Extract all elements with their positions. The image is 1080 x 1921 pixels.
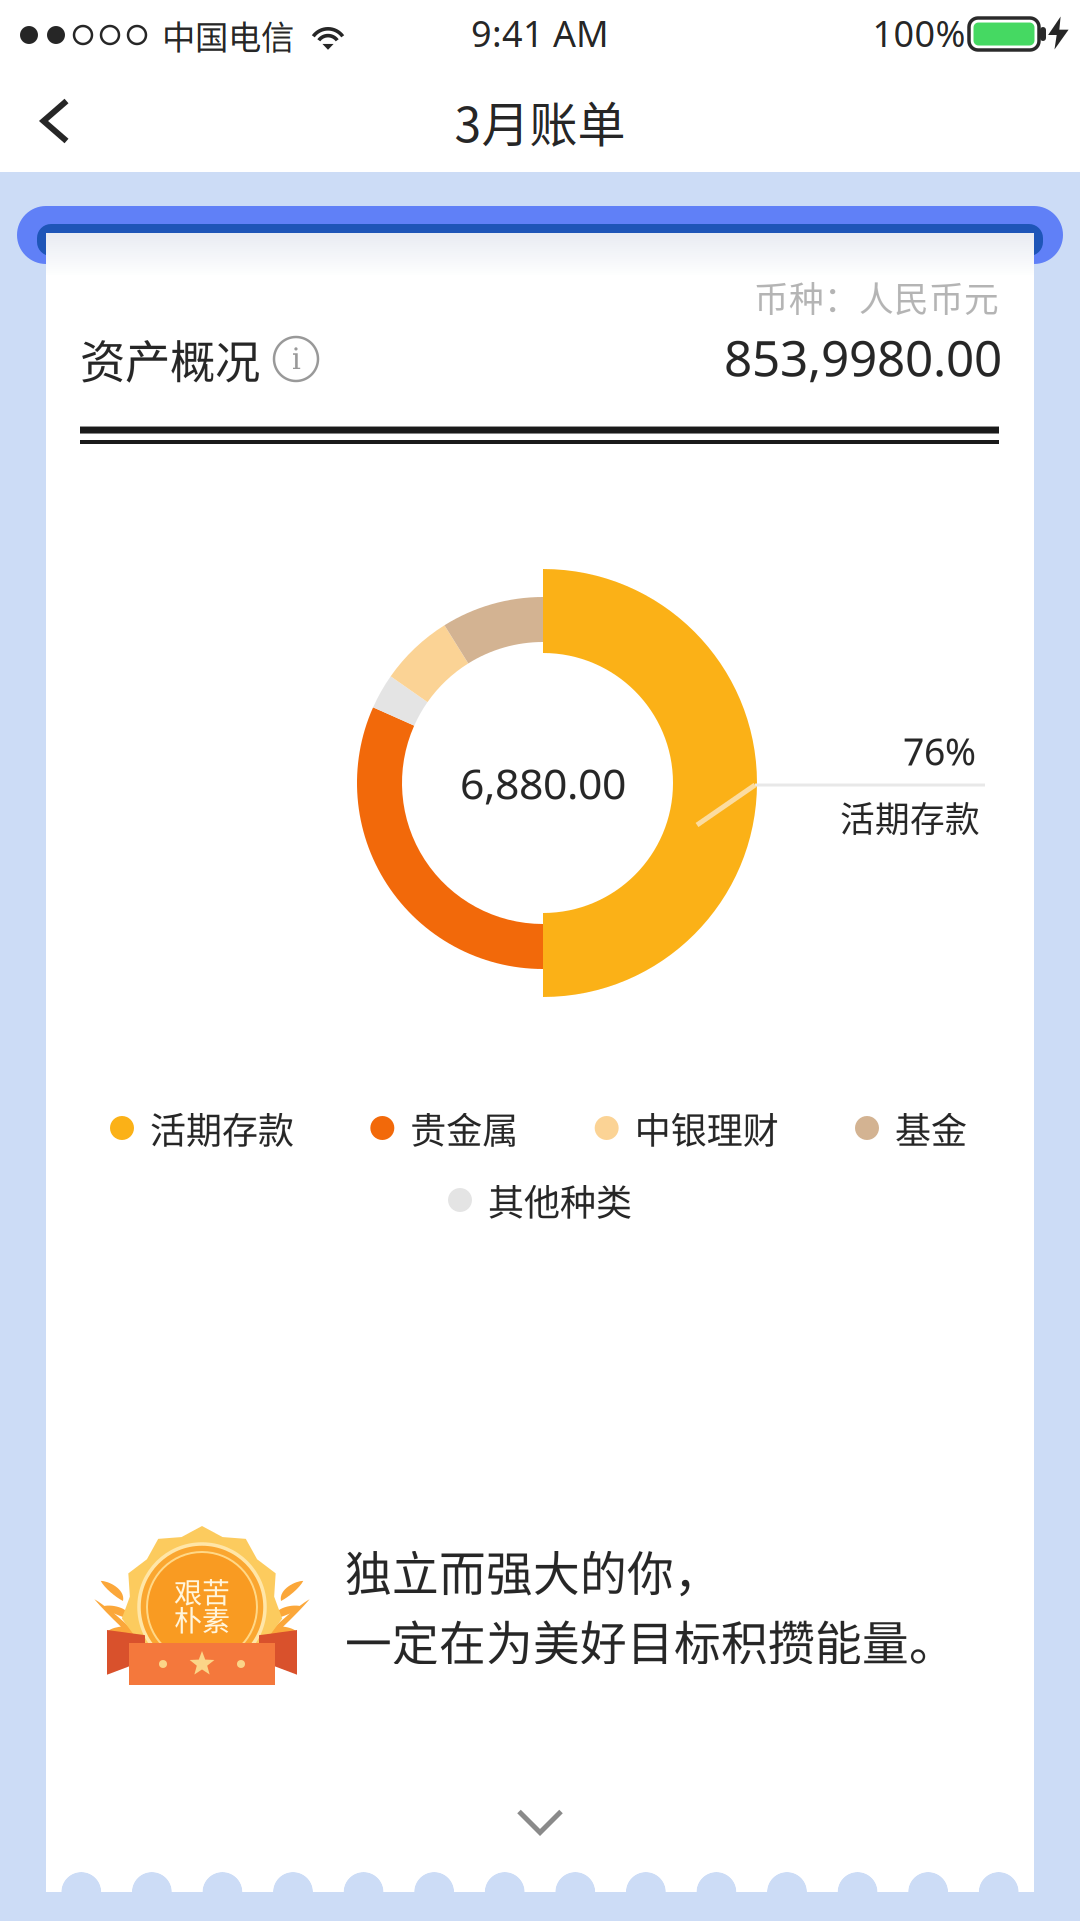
staticText: 9:41 AM — [471, 9, 609, 57]
staticText: i — [291, 342, 300, 376]
staticText: 853,9980.00 — [724, 324, 1002, 390]
staticText: 基金 — [895, 1102, 967, 1154]
staticText: 艰苦 — [174, 1571, 230, 1611]
staticText: 资产概况 — [80, 326, 260, 392]
staticText: 活期存款 — [150, 1102, 294, 1154]
staticText: 独立而强大的你， — [345, 1536, 721, 1604]
button[interactable]: 展开更多 — [480, 1777, 600, 1867]
staticText: 一定在为美好目标积攒能量。 — [345, 1606, 956, 1674]
staticText: 币种：人民币元 — [754, 272, 999, 322]
button[interactable]: 返回 — [0, 70, 110, 172]
staticText: 100% — [872, 9, 965, 57]
staticText: 中银理财 — [635, 1102, 779, 1154]
staticText: 3月账单 — [454, 86, 625, 156]
staticText: 贵金属 — [410, 1102, 518, 1154]
staticText: 6,880.00 — [460, 755, 626, 811]
staticText: 其他种类 — [488, 1174, 632, 1226]
staticText: 76% — [903, 726, 976, 776]
staticText: 活期存款 — [840, 792, 980, 842]
staticText: 朴素 — [174, 1599, 230, 1639]
staticText: 中国电信 — [162, 11, 294, 59]
